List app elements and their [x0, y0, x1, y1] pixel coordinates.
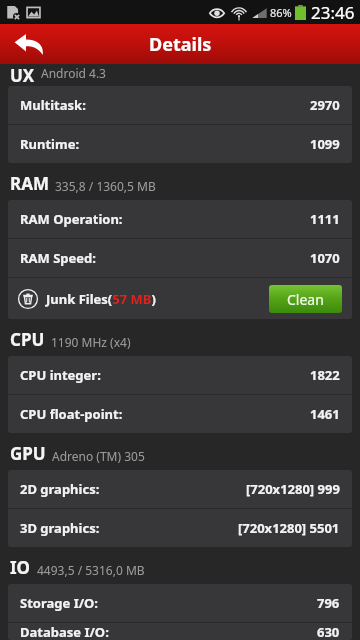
button[interactable]: Database I/O: [8, 623, 352, 640]
staticText: 2D graphics: [20, 480, 100, 498]
staticText: Junk Files(57 MB) [46, 290, 156, 308]
button[interactable]: Runtime: [8, 125, 352, 163]
staticText: CPU float-point: [20, 405, 123, 423]
button[interactable]: RAM Operation: [8, 200, 352, 238]
staticText: IO [10, 556, 31, 579]
staticText: UX [10, 64, 35, 82]
staticText: 1822 [310, 366, 340, 384]
staticText: 630 [317, 623, 340, 640]
button[interactable]: CPU integer: [8, 356, 352, 394]
staticText: Storage I/O: [20, 594, 99, 612]
staticText: 1111 [310, 210, 340, 228]
button[interactable]: Storage I/O: [8, 584, 352, 622]
staticText: 796 [317, 594, 340, 612]
staticText: Android 4.3 [41, 65, 106, 81]
button[interactable]: Back [0, 24, 58, 64]
staticText: Runtime: [20, 135, 80, 153]
staticText: 1070 [310, 249, 340, 267]
staticText: 335,8 / 1360,5 MB [55, 178, 156, 194]
button[interactable]: 3D graphics: [8, 509, 352, 547]
staticText: Multitask: [20, 96, 86, 114]
button[interactable]: Multitask: [8, 86, 352, 124]
staticText: 1099 [310, 135, 340, 153]
staticText: GPU [10, 442, 46, 465]
staticText: Clean [287, 290, 324, 309]
button[interactable]: CPU float-point: [8, 395, 352, 433]
staticText: 86% [270, 5, 292, 20]
staticText: 4493,5 / 5316,0 MB [37, 562, 145, 578]
staticText: Adreno (TM) 305 [52, 448, 145, 464]
staticText: CPU integer: [20, 366, 101, 384]
staticText: RAM [10, 172, 49, 195]
staticText: [720x1280] 999 [246, 480, 340, 498]
staticText: 1190 MHz (x4) [51, 334, 131, 350]
staticText: [720x1280] 5501 [238, 519, 340, 537]
staticText: CPU [10, 328, 45, 351]
staticText: Details [149, 32, 212, 57]
button[interactable]: 2D graphics: [8, 470, 352, 508]
staticText: RAM Operation: [20, 210, 123, 228]
staticText: 2970 [310, 96, 340, 114]
staticText: 1461 [310, 405, 340, 423]
staticText: Database I/O: [20, 623, 109, 640]
button[interactable]: RAM Speed: [8, 239, 352, 277]
staticText: 23:46 [311, 1, 355, 24]
staticText: 3D graphics: [20, 519, 100, 537]
staticText: RAM Speed: [20, 249, 96, 267]
button[interactable]: Clean [269, 285, 342, 313]
